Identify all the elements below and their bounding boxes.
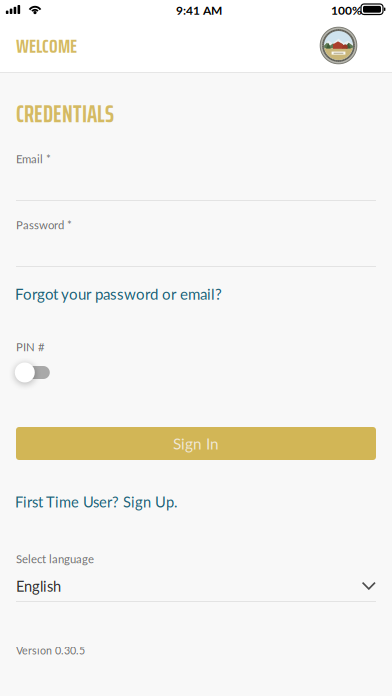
button[interactable]: PIN <box>15 361 55 383</box>
staticText: Email * <box>16 152 51 166</box>
button[interactable]: Forgot your password or email? <box>15 285 222 303</box>
staticText: CREDENTIALS <box>16 95 114 133</box>
staticText: Forgot your password or email? <box>15 285 222 303</box>
button[interactable]: First Time User? Sign Up. <box>15 493 177 511</box>
button[interactable]: Sign In <box>16 427 376 460</box>
staticText: Password * <box>16 218 72 232</box>
staticText: Sign In <box>173 434 219 453</box>
staticText: Version 0.30.5 <box>16 644 85 657</box>
staticText: English <box>16 577 61 595</box>
staticText: 100% <box>331 3 362 17</box>
button[interactable]: State seal <box>320 27 357 64</box>
staticText: First Time User? Sign Up. <box>15 493 177 511</box>
staticText: Select language <box>16 552 94 566</box>
staticText: 9:41 AM <box>176 3 222 17</box>
button[interactable]: English <box>16 576 376 596</box>
staticText: WELCOME <box>16 30 77 61</box>
staticText: PIN # <box>16 340 45 354</box>
